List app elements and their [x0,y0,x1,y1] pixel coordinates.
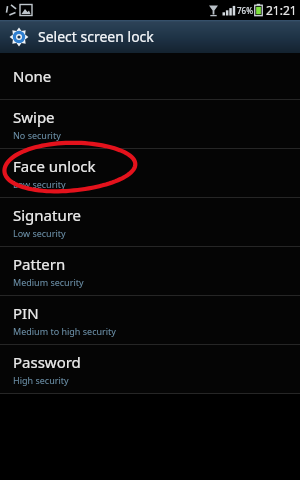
staticText: Swipe [13,107,55,127]
staticText: Low security [13,227,66,239]
staticText: Medium to high security [13,325,116,337]
button[interactable]: Password [0,345,300,393]
button[interactable]: Signature [0,198,300,246]
staticText: No security [13,129,61,141]
staticText: Signature [13,205,82,225]
button[interactable]: Face unlock [0,149,300,197]
staticText: 21:21 [266,2,297,18]
staticText: 76% [237,5,253,16]
staticText: Low security [13,178,66,190]
staticText: Password [13,352,81,372]
staticText: Medium security [13,276,84,288]
staticText: Pattern [13,254,66,274]
staticText: High security [13,374,69,386]
staticText: Face unlock [13,156,96,176]
other: Face unlock highlighted [0,0,300,480]
staticText: PIN [13,303,39,323]
staticText: None [13,66,52,86]
button[interactable]: Pattern [0,247,300,295]
button[interactable]: Swipe [0,100,300,148]
button[interactable]: None [0,53,300,99]
button[interactable]: PIN [0,296,300,344]
staticText: Select screen lock [38,27,154,46]
